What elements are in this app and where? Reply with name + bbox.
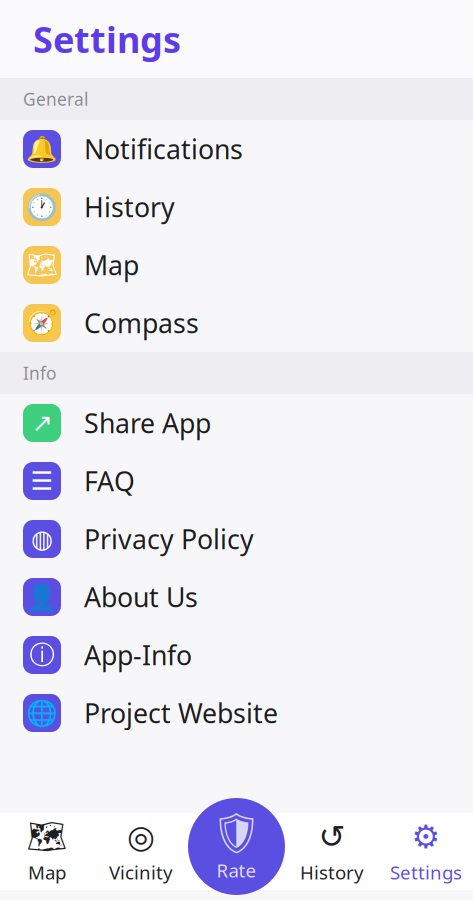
staticText: Settings: [33, 15, 181, 63]
staticText: 🗺: [26, 818, 67, 855]
button[interactable]: 🌐: [0, 684, 473, 742]
staticText: 🗺: [26, 250, 58, 279]
button[interactable]: 🧭: [0, 294, 473, 352]
button[interactable]: ⚙: [379, 813, 473, 890]
button[interactable]: 🛡: [188, 798, 285, 895]
staticText: FAQ: [84, 463, 135, 499]
staticText: 🧭: [26, 308, 58, 337]
staticText: ⚙: [411, 818, 440, 855]
staticText: General: [23, 87, 88, 110]
button[interactable]: ↺: [285, 813, 379, 890]
staticText: Project Website: [84, 695, 278, 731]
staticText: 🛡: [211, 810, 262, 856]
staticText: Notifications: [84, 131, 243, 167]
staticText: Rate: [216, 858, 256, 883]
staticText: ◍: [31, 525, 53, 553]
button[interactable]: ◍: [0, 510, 473, 568]
staticText: Settings: [390, 860, 462, 885]
staticText: App-Info: [84, 637, 192, 673]
staticText: 🕐: [26, 192, 58, 221]
staticText: About Us: [84, 579, 198, 615]
staticText: ↺: [318, 818, 345, 855]
staticText: 👤: [26, 582, 58, 611]
button[interactable]: 👤: [0, 568, 473, 626]
button[interactable]: ◎: [94, 813, 188, 890]
staticText: History: [300, 860, 364, 885]
staticText: Info: [23, 361, 56, 384]
button[interactable]: 🔔: [0, 120, 473, 178]
staticText: History: [84, 189, 175, 225]
staticText: Map: [84, 247, 139, 283]
staticText: 🌐: [26, 698, 58, 727]
staticText: Share App: [84, 405, 211, 441]
button[interactable]: ⓘ: [0, 626, 473, 684]
staticText: Privacy Policy: [84, 521, 254, 557]
staticText: ⓘ: [29, 639, 54, 670]
button[interactable]: ↗: [0, 394, 473, 452]
staticText: 🔔: [26, 134, 58, 163]
button[interactable]: 🗺: [0, 813, 94, 890]
staticText: ◎: [127, 818, 155, 855]
staticText: Compass: [84, 305, 199, 341]
staticText: Vicinity: [109, 860, 173, 885]
button[interactable]: ☰: [0, 452, 473, 510]
staticText: Map: [28, 860, 66, 885]
staticText: ↗: [31, 409, 52, 437]
button[interactable]: 🗺: [0, 236, 473, 294]
staticText: ☰: [30, 467, 53, 495]
button[interactable]: 🕐: [0, 178, 473, 236]
